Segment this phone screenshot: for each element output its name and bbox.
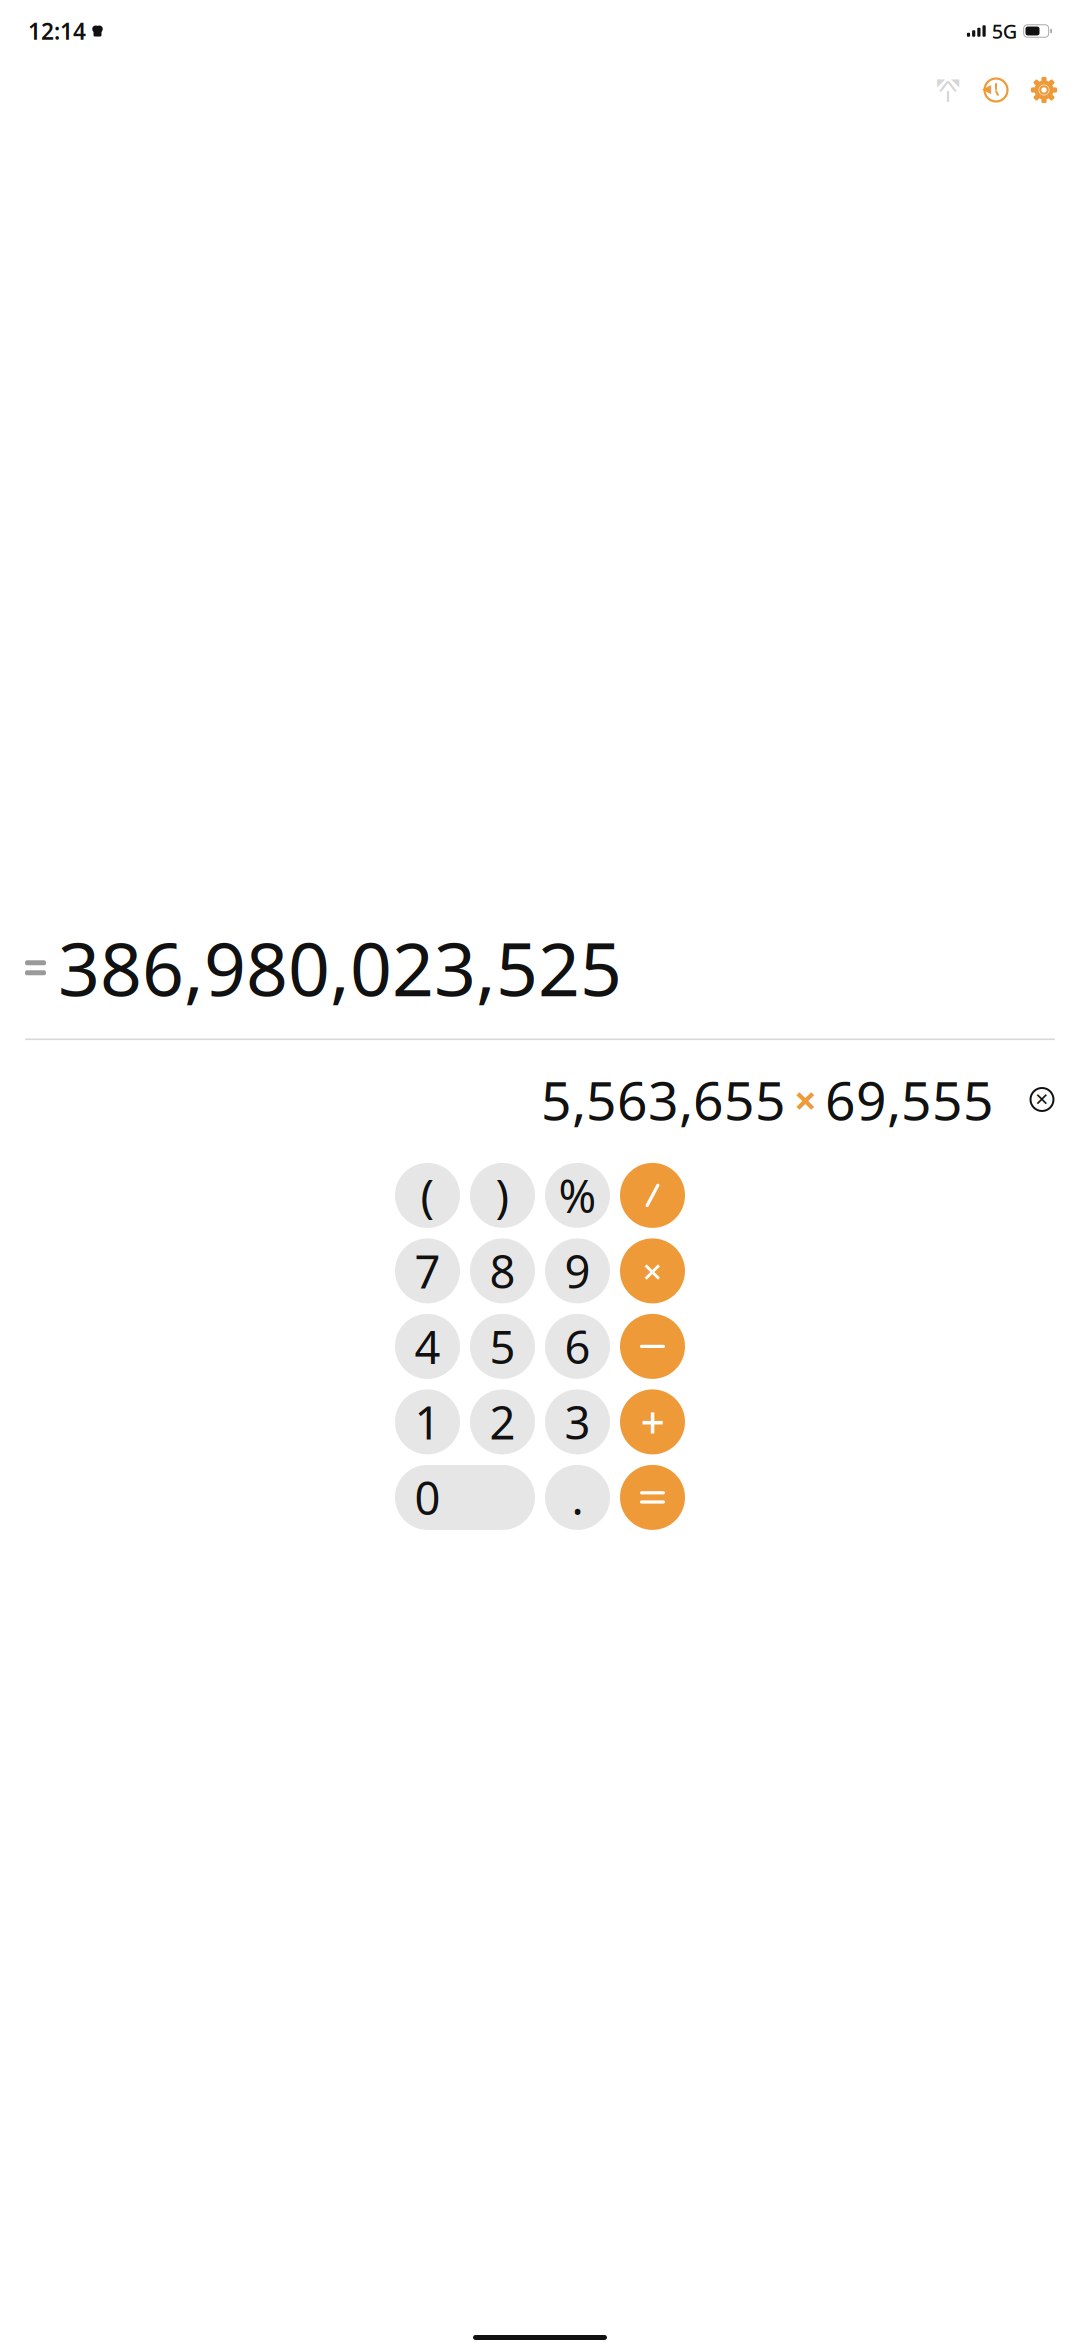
button[interactable]: 2 xyxy=(470,1389,535,1454)
button[interactable]: 3 xyxy=(545,1389,610,1454)
staticText: 7 xyxy=(414,1241,440,1301)
button[interactable]: 5 xyxy=(470,1314,535,1379)
staticText: 6 xyxy=(564,1316,590,1376)
staticText: 5,563,655 xyxy=(541,1064,786,1135)
button[interactable]: 7 xyxy=(395,1238,460,1303)
staticText: 9 xyxy=(564,1241,590,1301)
button[interactable]: 6 xyxy=(545,1314,610,1379)
button[interactable]: Multiply xyxy=(620,1238,685,1303)
staticText: ◀ xyxy=(982,82,991,95)
button[interactable]: Equals xyxy=(620,1465,685,1530)
staticText: % xyxy=(558,1165,596,1225)
button[interactable]: 8 xyxy=(470,1238,535,1303)
staticText: ) xyxy=(495,1165,509,1225)
staticText: 12:14 xyxy=(28,16,86,46)
staticText: ✕ xyxy=(1034,1090,1049,1109)
staticText: ◥ xyxy=(951,76,959,88)
button[interactable]: % xyxy=(545,1163,610,1228)
staticText: 5 xyxy=(489,1316,515,1376)
staticText: 3 xyxy=(564,1392,590,1452)
button[interactable]: Settings xyxy=(1020,66,1068,114)
staticText: 386,980,023,525 xyxy=(58,919,622,1016)
staticText: 8 xyxy=(489,1241,515,1301)
button[interactable]: Delete xyxy=(1020,1077,1064,1121)
button[interactable]: . xyxy=(545,1465,610,1530)
button[interactable]: Branch xyxy=(924,66,972,114)
staticText: 69,555 xyxy=(825,1064,994,1135)
staticText: ( xyxy=(420,1165,434,1225)
staticText: ◤ xyxy=(937,76,945,88)
staticText: 0 xyxy=(414,1467,440,1527)
staticText: × xyxy=(642,1248,662,1294)
staticText: . xyxy=(571,1467,583,1527)
staticText: 4 xyxy=(414,1316,440,1376)
button[interactable]: 1 xyxy=(395,1389,460,1454)
staticText: 2 xyxy=(489,1392,515,1452)
button[interactable]: Add xyxy=(620,1389,685,1454)
button[interactable]: ) xyxy=(470,1163,535,1228)
button[interactable]: 0 xyxy=(395,1465,535,1530)
staticText: 1 xyxy=(414,1392,440,1452)
staticText: 5G xyxy=(992,18,1018,44)
button[interactable]: 4 xyxy=(395,1314,460,1379)
button[interactable]: Divide xyxy=(620,1163,685,1228)
button[interactable]: History xyxy=(972,66,1020,114)
button[interactable]: Subtract xyxy=(620,1314,685,1379)
staticText: + xyxy=(640,1394,664,1450)
staticText: × xyxy=(794,1073,817,1126)
button[interactable]: ( xyxy=(395,1163,460,1228)
button[interactable]: 9 xyxy=(545,1238,610,1303)
